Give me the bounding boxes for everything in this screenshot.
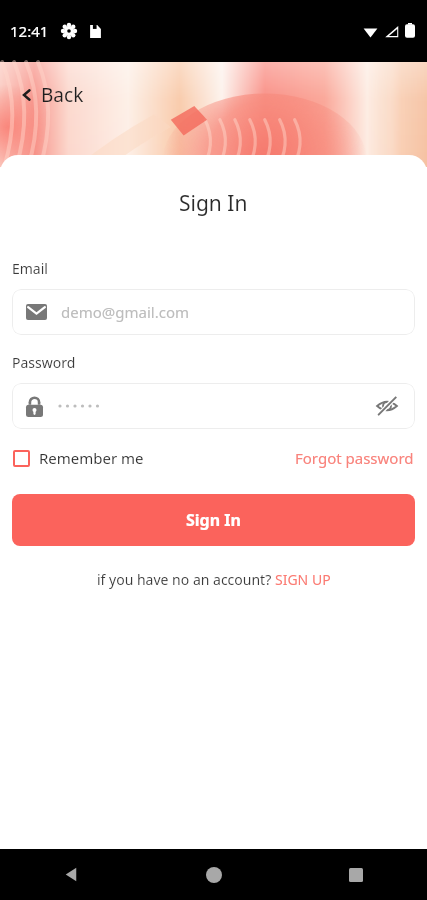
button[interactable]: Email [12,289,415,335]
other: Password [26,396,43,417]
staticText: Forgot password [295,448,414,468]
staticText: Password [12,353,76,372]
button[interactable]: Back [0,849,143,900]
staticText: SIGN UP [275,570,331,589]
button[interactable]: Password [12,383,415,429]
button[interactable]: Recent apps [285,849,427,900]
staticText: Back [41,82,84,108]
button[interactable]: Toggle password visibility [373,394,401,418]
staticText: Remember me [39,448,144,468]
staticText: Email [12,259,48,278]
button[interactable]: Forgot password [294,445,415,471]
staticText: if you have no an account? [97,570,275,589]
staticText: 12:41 [10,21,49,41]
other: Email [26,304,47,320]
button[interactable]: Remember me [12,445,145,471]
staticText: Sign In [186,509,241,531]
button[interactable]: Back [14,78,90,112]
staticText: Sign In [179,189,248,218]
button[interactable]: SIGN UP [275,570,331,589]
staticText: demo@gmail.com [61,302,189,322]
button[interactable]: Home [143,849,285,900]
button[interactable]: Sign In [12,494,415,546]
